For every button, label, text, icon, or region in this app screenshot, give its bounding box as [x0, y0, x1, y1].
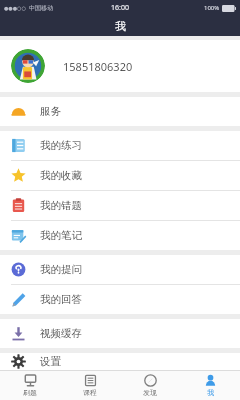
- staticText: 发现: [143, 388, 157, 397]
- staticText: 刷题: [23, 388, 37, 397]
- button[interactable]: 服务: [0, 97, 240, 126]
- staticText: 16:00: [111, 3, 129, 13]
- staticText: 服务: [40, 105, 61, 118]
- staticText: 设置: [40, 355, 61, 368]
- staticText: 我的练习: [40, 139, 82, 152]
- button[interactable]: 视频缓存: [0, 319, 240, 348]
- button[interactable]: 我的回答: [0, 285, 240, 314]
- staticText: 中国移动: [29, 4, 53, 12]
- button[interactable]: 发现: [120, 370, 180, 400]
- button[interactable]: 设置: [0, 353, 240, 370]
- button[interactable]: 我的笔记: [0, 221, 240, 250]
- staticText: 100%: [204, 4, 220, 12]
- button[interactable]: 我的提问: [0, 255, 240, 284]
- button[interactable]: 我的错题: [0, 191, 240, 220]
- staticText: 我: [207, 388, 214, 397]
- button[interactable]: 课程: [60, 370, 120, 400]
- staticText: 15851806320: [63, 59, 133, 74]
- staticText: 我的收藏: [40, 169, 82, 182]
- staticText: 我的回答: [40, 293, 82, 306]
- staticText: 课程: [83, 388, 97, 397]
- other: Avatar: [11, 49, 45, 83]
- staticText: 我的错题: [40, 199, 82, 212]
- button[interactable]: Avatar: [0, 40, 240, 92]
- staticText: 我: [115, 19, 126, 33]
- staticText: 我的笔记: [40, 229, 82, 242]
- staticText: 我的提问: [40, 263, 82, 276]
- staticText: 视频缓存: [40, 327, 82, 340]
- button[interactable]: 我: [180, 370, 240, 400]
- staticText: ●●●○○: [4, 5, 26, 11]
- button[interactable]: 我的收藏: [0, 161, 240, 190]
- button[interactable]: 我的练习: [0, 131, 240, 160]
- button[interactable]: 刷题: [0, 370, 60, 400]
